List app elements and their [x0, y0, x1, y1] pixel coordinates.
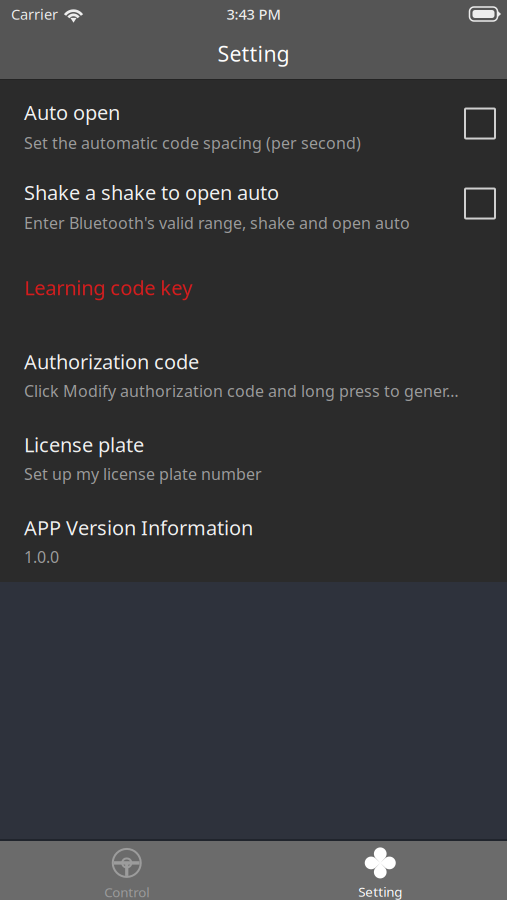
staticText: Control: [104, 883, 149, 900]
button[interactable]: Auto open: [0, 80, 507, 160]
staticText: Enter Bluetooth's valid range, shake and…: [24, 212, 410, 234]
button[interactable]: Control: [0, 841, 253, 900]
staticText: License plate: [24, 431, 144, 458]
staticText: Authorization code: [24, 348, 199, 375]
staticText: Auto open: [24, 98, 120, 126]
staticText: Carrier: [11, 4, 58, 24]
staticText: Click Modify authorization code and long…: [24, 380, 459, 402]
button[interactable]: Learning code key: [0, 254, 507, 328]
staticText: Shake a shake to open auto: [24, 178, 279, 206]
staticText: Set up my license plate number: [24, 463, 262, 485]
staticText: Setting: [217, 39, 289, 68]
staticText: Setting: [358, 882, 402, 900]
staticText: APP Version Information: [24, 514, 253, 541]
button[interactable]: Shake a shake to open auto: [0, 160, 507, 254]
staticText: 3:43 PM: [226, 4, 280, 24]
button[interactable]: Setting: [253, 841, 507, 900]
staticText: Learning code key: [24, 274, 192, 301]
staticText: 1.0.0: [24, 546, 59, 568]
staticText: Set the automatic code spacing (per seco…: [24, 132, 361, 154]
button[interactable]: APP Version Information: [0, 494, 507, 582]
button[interactable]: License plate: [0, 411, 507, 494]
button[interactable]: Authorization code: [0, 328, 507, 411]
